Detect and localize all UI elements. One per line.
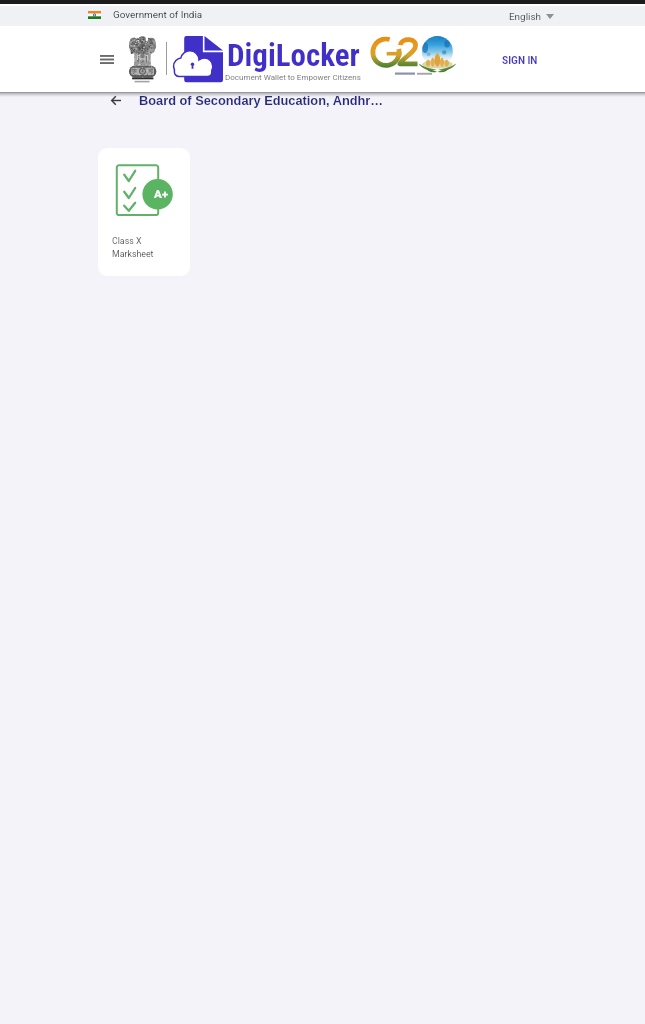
- staticText: Class X: [112, 236, 142, 246]
- staticText: Marksheet: [112, 249, 154, 259]
- button[interactable]: English: [503, 6, 560, 27]
- staticText: Board of Secondary Education, Andhr…: [139, 93, 384, 107]
- staticText: DigiLocker: [227, 37, 360, 73]
- staticText: A+: [154, 187, 169, 201]
- staticText: SIGN IN: [502, 55, 538, 67]
- staticText: Document Wallet to Empower Citizens: [225, 73, 361, 82]
- staticText: English: [509, 11, 541, 23]
- staticText: Government of India: [113, 9, 203, 21]
- button[interactable]: Open navigation menu: [93, 44, 121, 74]
- button[interactable]: SIGN IN: [493, 48, 547, 74]
- button[interactable]: Back: [103, 90, 129, 110]
- button[interactable]: A+: [98, 148, 190, 276]
